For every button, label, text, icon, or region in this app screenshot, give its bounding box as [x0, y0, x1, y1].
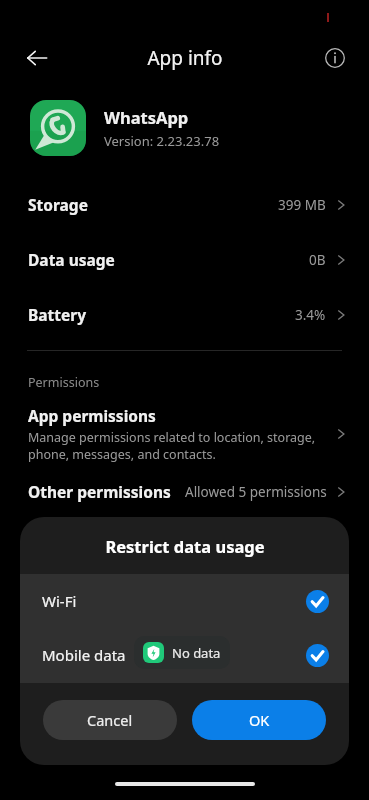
staticText: 3.4% — [295, 306, 326, 324]
staticText: WhatsApp — [104, 106, 189, 128]
staticText: Restrict data usage — [105, 535, 265, 557]
staticText: Cancel — [87, 710, 133, 730]
button[interactable]: Storage — [0, 177, 369, 232]
staticText: App info — [147, 45, 223, 71]
staticText: Other permissions — [28, 481, 171, 502]
staticText: phone, messages, and contacts. — [28, 446, 216, 463]
button[interactable]: Mobile data — [20, 628, 349, 682]
staticText: No data — [172, 644, 221, 662]
button[interactable]: Battery — [0, 287, 369, 342]
staticText: Mobile data — [42, 645, 126, 665]
button[interactable]: Other permissions — [0, 481, 369, 502]
staticText: App permissions — [28, 405, 156, 426]
button[interactable]: App info details — [317, 40, 353, 76]
staticText: 399 MB — [278, 196, 326, 214]
staticText: Data usage — [28, 249, 115, 270]
staticText: Version: 2.23.23.78 — [104, 132, 220, 150]
button[interactable]: Back — [17, 38, 57, 78]
button[interactable]: App permissions — [0, 403, 369, 467]
staticText: Wi-Fi — [42, 591, 77, 611]
staticText: Manage permissions related to location, … — [28, 429, 316, 446]
staticText: 0B — [309, 251, 326, 269]
button[interactable]: Wi-Fi — [20, 574, 349, 628]
staticText: OK — [249, 710, 270, 730]
staticText: Permissions — [28, 374, 100, 391]
staticText: Battery — [28, 304, 87, 325]
button[interactable]: Data usage — [0, 232, 369, 287]
button[interactable]: Cancel — [43, 700, 177, 740]
button[interactable]: OK — [192, 700, 326, 740]
staticText: Allowed 5 permissions — [185, 483, 327, 501]
staticText: Storage — [28, 194, 88, 215]
